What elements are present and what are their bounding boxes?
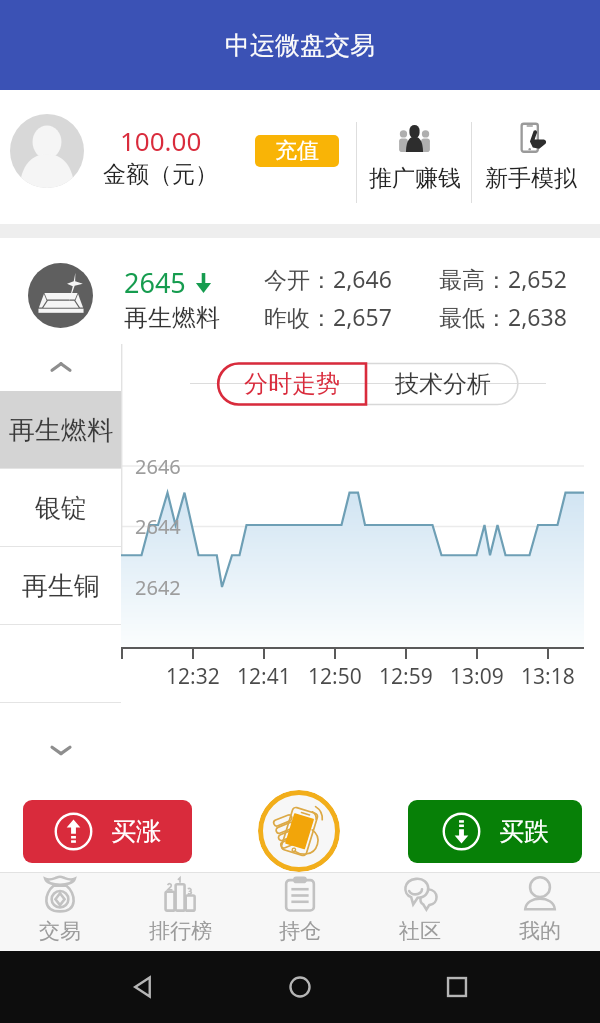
staticText: 再生铜 — [22, 570, 100, 603]
staticText: 推广赚钱 — [369, 164, 461, 193]
staticText: 我的 — [519, 918, 561, 944]
staticText: 技术分析 — [395, 369, 491, 399]
button[interactable]: Scroll up — [0, 344, 121, 391]
button[interactable]: Shake to trade — [258, 790, 340, 872]
staticText: 今开：2,646 — [264, 263, 392, 294]
button[interactable]: 我的 — [480, 873, 600, 951]
staticText: 银锭 — [35, 492, 87, 525]
staticText: 昨收：2,657 — [264, 301, 392, 332]
button[interactable]: 社区 — [360, 873, 480, 951]
button[interactable]: Profile — [10, 114, 84, 188]
button[interactable]: 交易 — [0, 873, 120, 951]
staticText: 100.00 — [120, 123, 202, 158]
other: Back — [129, 973, 157, 1001]
staticText: 新手模拟 — [485, 164, 577, 193]
button[interactable]: 买涨 — [23, 800, 192, 863]
button[interactable]: 买跌 — [408, 800, 582, 863]
staticText: 买涨 — [111, 816, 161, 847]
button[interactable]: Commodity — [28, 263, 93, 328]
staticText: 中运微盘交易 — [225, 30, 375, 61]
button[interactable]: 新手模拟 — [472, 90, 590, 224]
button[interactable]: 排行榜 — [120, 873, 240, 951]
staticText: 持仓 — [279, 918, 321, 944]
button[interactable] — [0, 625, 121, 703]
button[interactable]: 再生铜 — [0, 547, 121, 625]
button[interactable]: 持仓 — [240, 873, 360, 951]
button[interactable]: Scroll down — [0, 725, 121, 775]
staticText: 充值 — [275, 137, 319, 165]
button[interactable]: 银锭 — [0, 469, 121, 547]
staticText: 再生燃料 — [124, 303, 220, 333]
staticText: 金额（元） — [103, 160, 218, 189]
staticText: 买跌 — [499, 816, 549, 847]
button[interactable]: 充值 — [255, 135, 339, 167]
other: Recents — [443, 973, 471, 1001]
staticText: 社区 — [399, 918, 441, 944]
staticText: 最低：2,638 — [439, 301, 567, 332]
staticText: 2645 — [124, 264, 186, 301]
button[interactable]: 技术分析 — [366, 361, 519, 407]
staticText: 最高：2,652 — [439, 263, 567, 294]
button[interactable]: 分时走势 — [217, 361, 366, 407]
button[interactable]: 再生燃料 — [0, 391, 121, 469]
other: Scroll down — [47, 736, 75, 764]
other: Scroll up — [47, 354, 75, 382]
other: Home — [286, 973, 314, 1001]
staticText: 分时走势 — [244, 369, 340, 399]
button[interactable]: 推广赚钱 — [358, 90, 471, 224]
staticText: 排行榜 — [149, 918, 212, 944]
staticText: 交易 — [39, 918, 81, 944]
staticText: 再生燃料 — [9, 414, 113, 447]
